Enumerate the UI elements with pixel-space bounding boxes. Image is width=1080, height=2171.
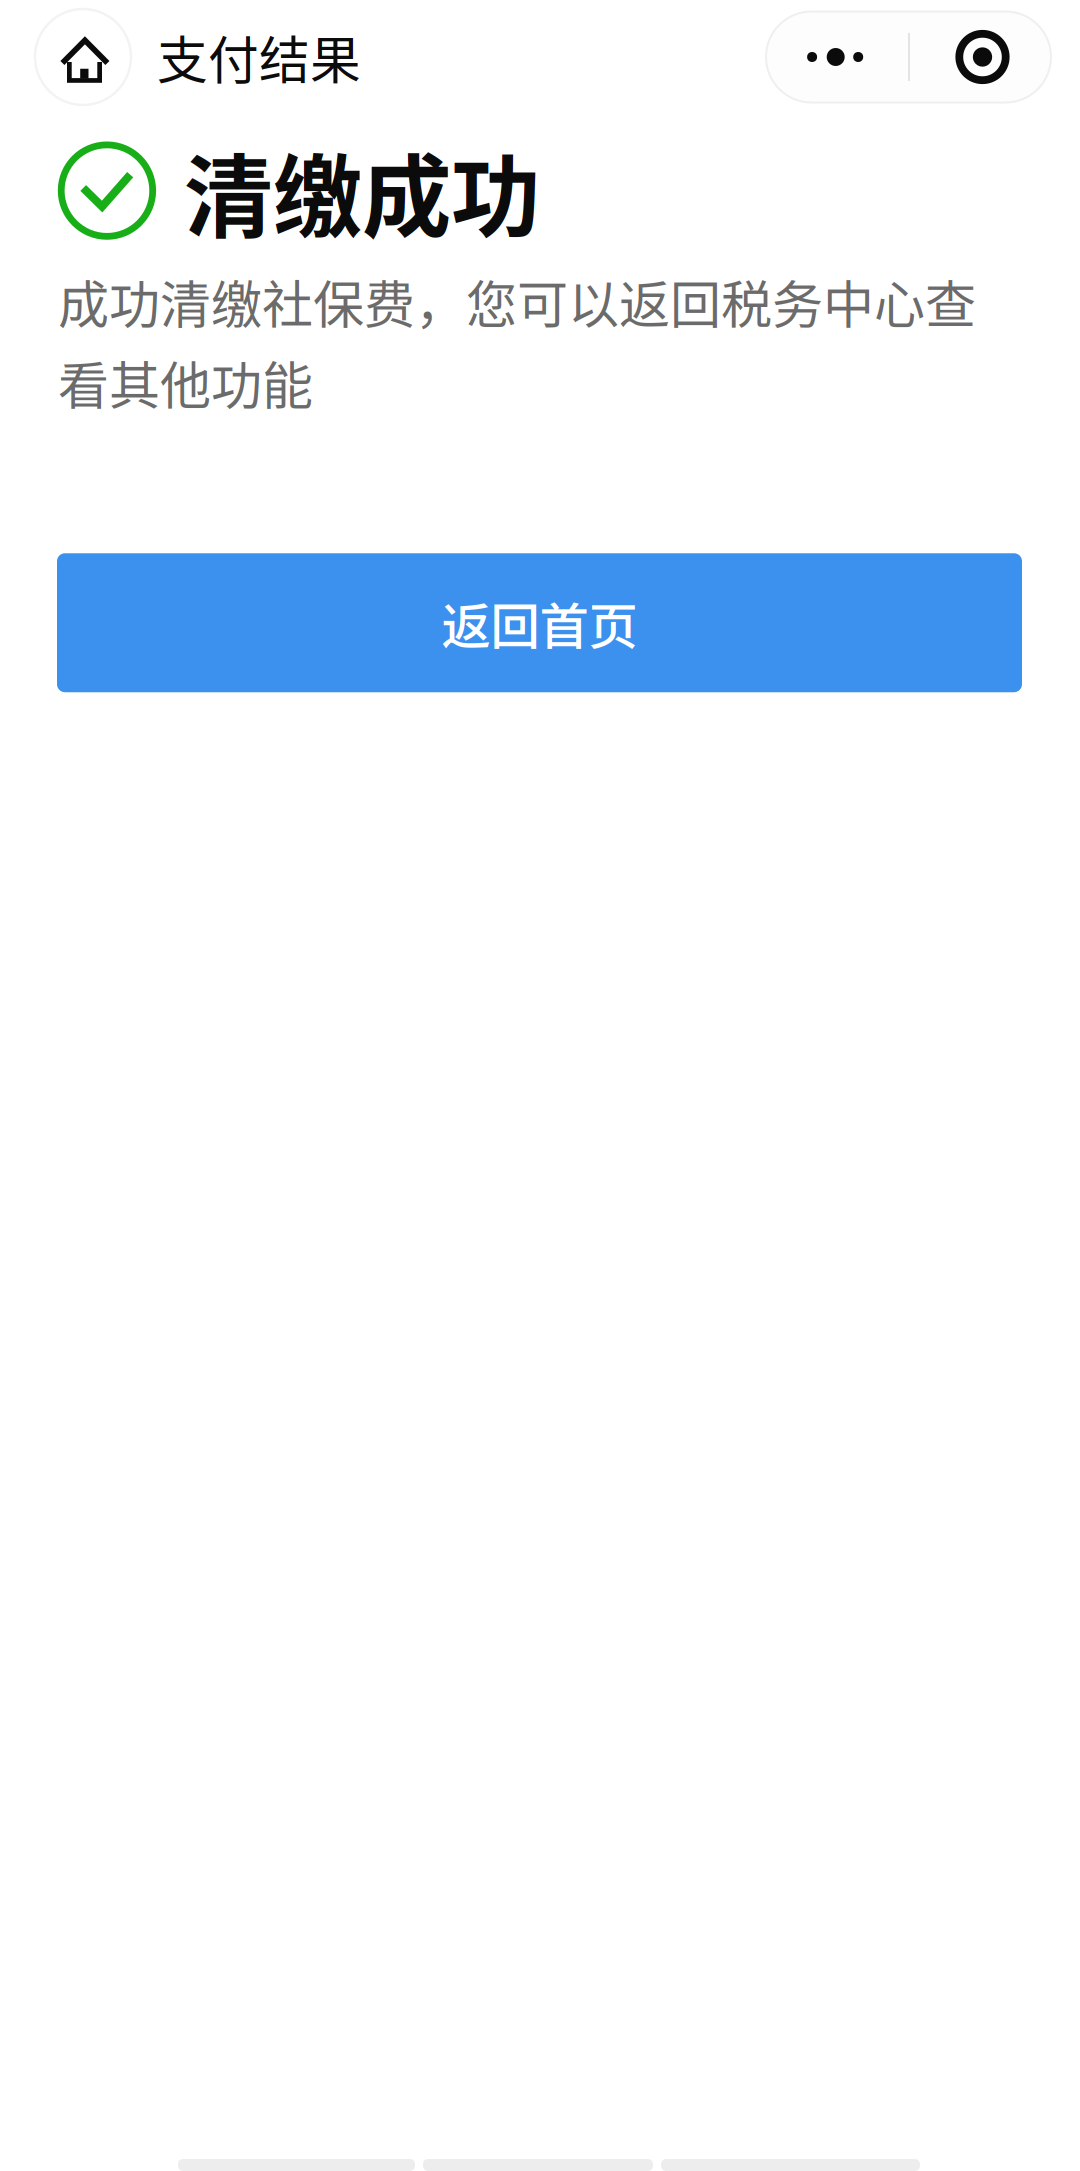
- staticText: 返回首页: [441, 587, 637, 658]
- staticText: 清缴成功: [184, 126, 540, 255]
- button[interactable]: 更多: [766, 11, 1051, 102]
- button[interactable]: 支付结果: [131, 8, 361, 106]
- staticText: 成功清缴社保费，您可以返回税务中心查: [58, 264, 976, 338]
- button[interactable]: 首页: [35, 8, 131, 106]
- staticText: 看其他功能: [58, 345, 313, 419]
- button[interactable]: 返回首页: [57, 553, 1022, 692]
- staticText: 支付结果: [157, 20, 361, 94]
